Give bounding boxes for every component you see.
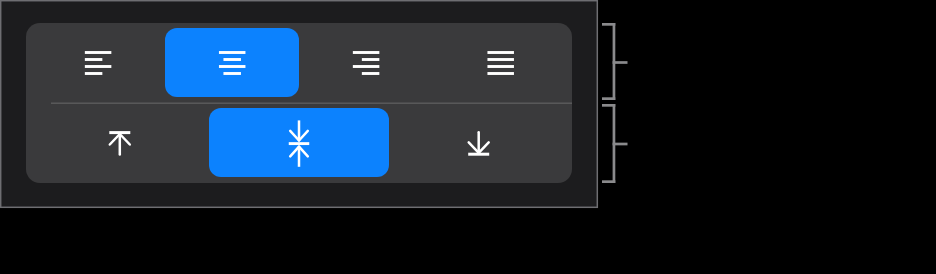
button[interactable]: Align top: [30, 108, 209, 177]
button[interactable]: Align left: [31, 28, 165, 97]
button[interactable]: Justify: [433, 28, 567, 97]
button[interactable]: Align right: [299, 28, 433, 97]
button[interactable]: Align middle: [209, 108, 389, 177]
button[interactable]: Align bottom: [389, 108, 568, 177]
button[interactable]: Align center: [165, 28, 299, 97]
